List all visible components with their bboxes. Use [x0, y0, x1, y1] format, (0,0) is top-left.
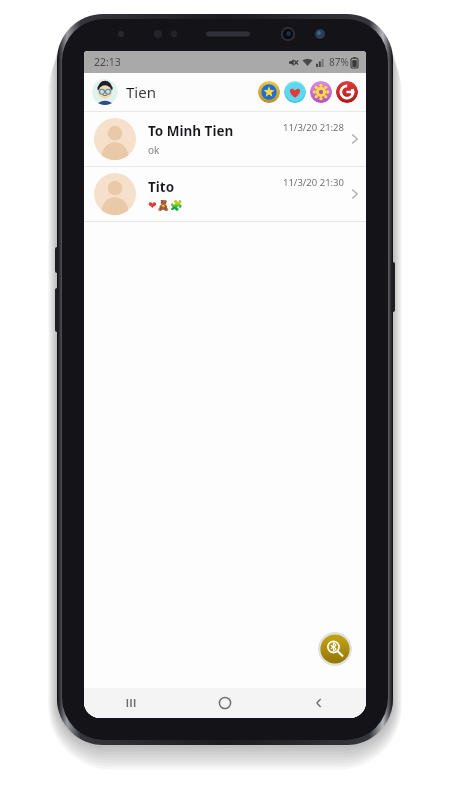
staticText: To Minh Tien [148, 122, 234, 140]
button[interactable]: To Minh Tien [84, 112, 366, 166]
staticText: ❤️🧸🧩 [148, 199, 183, 211]
staticText: 11/3/20 21:30 [283, 176, 344, 189]
button[interactable]: Back [272, 688, 366, 718]
staticText: 22:13 [94, 55, 121, 69]
button[interactable]: Settings [310, 81, 332, 103]
staticText: Tien [126, 82, 156, 102]
staticText: 11/3/20 21:28 [283, 121, 344, 134]
button[interactable]: Log out [336, 81, 358, 103]
button[interactable]: Recent apps [84, 688, 178, 718]
button[interactable]: Home [178, 688, 272, 718]
button[interactable]: Scan for Bluetooth devices [318, 632, 352, 666]
staticText: Tito [148, 178, 175, 196]
button[interactable]: Favourites [284, 81, 306, 103]
button[interactable]: Rewards [258, 81, 280, 103]
button[interactable]: Profile [92, 79, 118, 105]
staticText: ok [148, 143, 160, 157]
staticText: 87% [329, 55, 349, 69]
button[interactable]: Tito [84, 167, 366, 221]
